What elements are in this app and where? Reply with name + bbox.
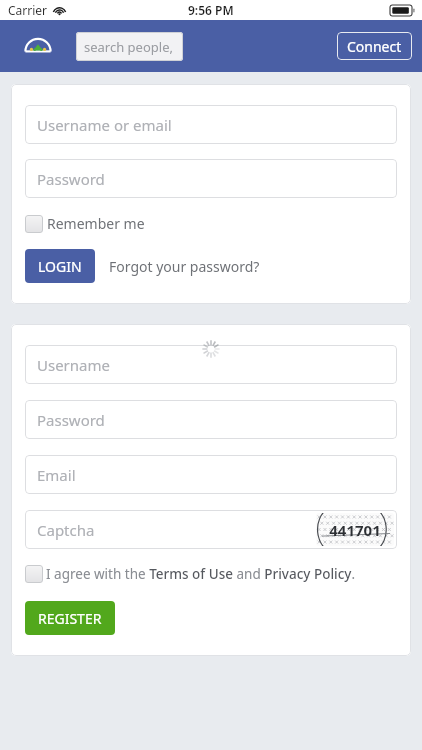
staticText: search people,: [84, 38, 173, 56]
button[interactable]: Forgot your password?: [109, 257, 260, 276]
button[interactable]: Connect: [337, 32, 412, 60]
button[interactable]: Username or email: [25, 105, 397, 144]
staticText: 441701: [329, 520, 381, 540]
staticText: Password: [37, 169, 105, 189]
button[interactable]: Username: [25, 345, 397, 384]
button[interactable]: Captcha: [25, 510, 397, 549]
staticText: LOGIN: [38, 257, 82, 276]
button[interactable]: I agree with the Terms of Use and Privac…: [25, 565, 356, 583]
staticText: Connect: [347, 37, 402, 56]
staticText: Password: [37, 410, 105, 430]
staticText: Forgot your password?: [109, 257, 260, 276]
staticText: Carrier: [8, 2, 48, 18]
staticText: REGISTER: [38, 609, 102, 628]
staticText: 9:56 PM: [188, 2, 234, 18]
staticText: Username or email: [37, 115, 172, 135]
button[interactable]: Email: [25, 455, 397, 494]
button[interactable]: REGISTER: [25, 601, 115, 635]
staticText: Captcha: [37, 520, 95, 540]
button[interactable]: Password: [25, 400, 397, 439]
button[interactable]: Password: [25, 159, 397, 198]
button[interactable]: Remember me: [25, 214, 145, 233]
staticText: Email: [37, 465, 76, 485]
staticText: Remember me: [47, 214, 145, 233]
button[interactable]: Home logo: [20, 33, 56, 59]
staticText: Username: [37, 355, 110, 375]
staticText: I agree with the Terms of Use and Privac…: [46, 565, 356, 583]
button[interactable]: search people,: [76, 32, 183, 61]
other: Captcha image: [316, 513, 394, 546]
button[interactable]: LOGIN: [25, 249, 95, 283]
